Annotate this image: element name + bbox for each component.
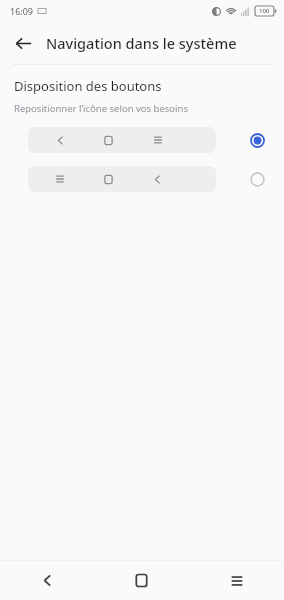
staticText: 100 <box>259 7 270 15</box>
button[interactable]: Disposition inversée <box>240 164 274 194</box>
button[interactable]: Retour <box>0 561 94 600</box>
staticText: Disposition des boutons <box>14 77 162 95</box>
button[interactable]: Disposition inversée <box>0 164 284 194</box>
button[interactable]: Disposition standard <box>0 125 284 155</box>
button[interactable]: Accueil <box>94 561 189 600</box>
button[interactable]: Applications récentes <box>189 561 284 600</box>
staticText: 16:09 <box>10 5 34 17</box>
staticText: Repositionner l’icône selon vos besoins <box>14 102 188 115</box>
button[interactable]: Retour <box>6 26 40 60</box>
button[interactable]: Disposition standard <box>240 125 274 155</box>
staticText: Navigation dans le système <box>46 33 237 53</box>
